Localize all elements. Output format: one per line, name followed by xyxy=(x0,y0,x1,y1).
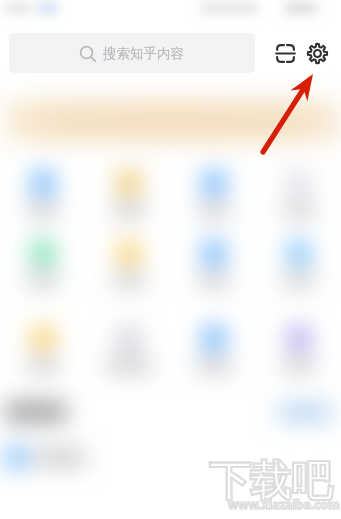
button[interactable] xyxy=(171,242,256,294)
button[interactable] xyxy=(171,327,256,379)
button[interactable] xyxy=(256,327,341,379)
button[interactable] xyxy=(86,327,171,379)
button[interactable] xyxy=(86,172,171,224)
button[interactable] xyxy=(0,327,86,379)
button[interactable]: Settings xyxy=(301,37,333,69)
button[interactable]: Scan QR code xyxy=(269,37,301,69)
button[interactable] xyxy=(86,242,171,294)
button[interactable] xyxy=(171,172,256,224)
staticText: 搜索知乎内容 xyxy=(103,45,184,62)
button[interactable]: 搜索知乎内容 xyxy=(9,33,255,73)
button[interactable] xyxy=(256,172,341,224)
staticText: www.xiazaiba.com xyxy=(228,496,340,512)
button[interactable] xyxy=(0,172,86,224)
button[interactable] xyxy=(0,242,86,294)
button[interactable] xyxy=(256,242,341,294)
staticText: 下载吧 xyxy=(209,456,332,508)
